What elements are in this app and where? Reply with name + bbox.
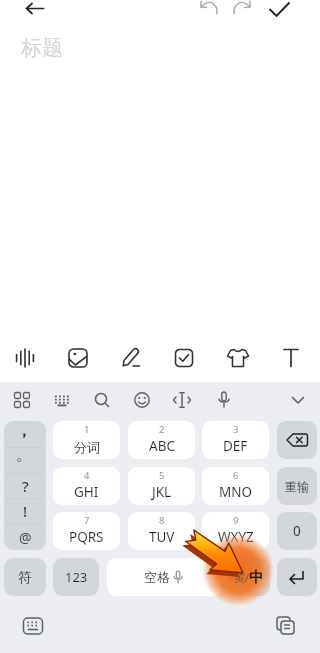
staticText: 。 [16, 445, 32, 465]
button[interactable]: 2 [128, 421, 195, 459]
button[interactable] [272, 612, 300, 640]
button[interactable] [9, 387, 35, 413]
button[interactable]: 9 [202, 512, 269, 550]
staticText: 空格 [144, 569, 170, 585]
button[interactable] [89, 387, 115, 413]
button[interactable]: 重输 [277, 467, 317, 505]
staticText: 9 [233, 514, 239, 527]
button[interactable]: 3 [202, 421, 269, 459]
staticText: 123 [65, 568, 88, 586]
staticText: ! [23, 501, 28, 521]
button[interactable]: ! [4, 498, 46, 524]
staticText: 0 [293, 522, 301, 540]
staticText: ABC [149, 437, 175, 455]
button[interactable]: 123 [53, 558, 99, 596]
staticText: PQRS [69, 528, 104, 546]
button[interactable]: ， [4, 421, 46, 447]
staticText: 8 [159, 514, 165, 527]
staticText: 标题 [21, 35, 63, 61]
staticText: MNO [219, 483, 253, 501]
button[interactable]: 空格 [107, 558, 221, 596]
button[interactable] [117, 344, 145, 372]
button[interactable] [129, 387, 155, 413]
staticText: 2 [159, 423, 165, 436]
button[interactable] [285, 387, 311, 413]
button[interactable]: 。 [4, 447, 46, 473]
button[interactable] [277, 558, 317, 596]
button[interactable]: 1 [53, 421, 120, 459]
staticText: 分词 [74, 439, 100, 455]
button[interactable] [264, 0, 294, 22]
button[interactable]: @ [4, 524, 46, 550]
staticText: DEF [223, 437, 248, 455]
button[interactable]: 7 [53, 512, 120, 550]
button[interactable] [64, 344, 92, 372]
staticText: @ [19, 528, 32, 547]
button[interactable] [277, 344, 305, 372]
staticText: 重输 [285, 479, 309, 494]
button[interactable] [277, 421, 317, 459]
button[interactable]: ? [4, 473, 46, 499]
button[interactable]: 0 [277, 512, 317, 550]
button[interactable]: 4 [53, 467, 120, 505]
staticText: 英/中 [234, 568, 264, 586]
staticText: TUV [149, 528, 175, 546]
button[interactable] [229, 0, 255, 20]
button[interactable] [211, 387, 237, 413]
button[interactable] [19, 612, 47, 640]
button[interactable]: 5 [128, 467, 195, 505]
button[interactable] [196, 0, 222, 20]
staticText: ， [16, 421, 32, 441]
staticText: 符 [18, 569, 32, 586]
button[interactable] [224, 344, 252, 372]
button[interactable] [228, 558, 270, 596]
staticText: 1 [84, 423, 90, 436]
button[interactable] [11, 344, 39, 372]
button[interactable] [169, 387, 195, 413]
button[interactable] [49, 387, 75, 413]
button[interactable]: 符 [4, 558, 46, 596]
button[interactable]: 6 [202, 467, 269, 505]
staticText: 6 [233, 469, 239, 482]
staticText: 5 [159, 469, 165, 482]
staticText: GHI [74, 483, 99, 501]
button[interactable] [170, 344, 198, 372]
staticText: WXYZ [218, 528, 254, 546]
staticText: 3 [233, 423, 239, 436]
staticText: ? [22, 476, 29, 496]
staticText: 7 [84, 514, 90, 527]
staticText: JKL [152, 483, 172, 501]
button[interactable] [20, 0, 50, 22]
staticText: 4 [84, 469, 90, 482]
button[interactable]: 8 [128, 512, 195, 550]
